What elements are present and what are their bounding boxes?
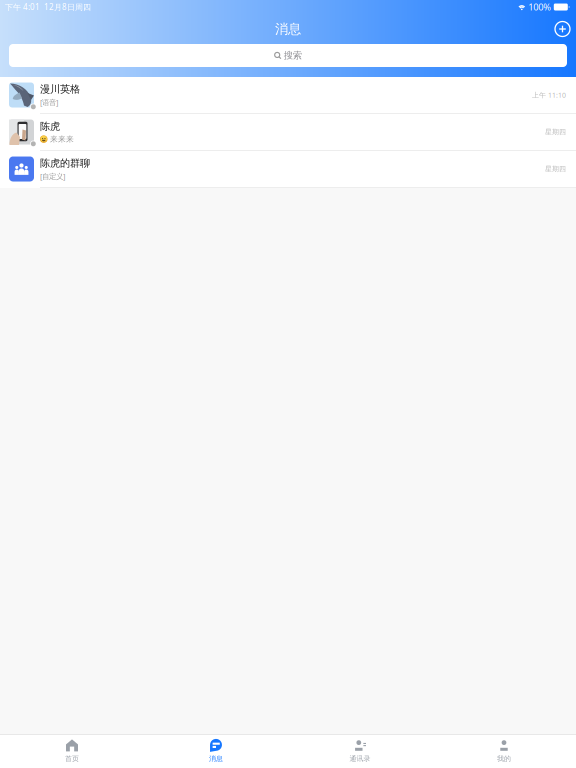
button[interactable]: New chat [549, 15, 576, 42]
staticText: 通讯录 [349, 754, 370, 763]
staticText: 星期四 [545, 128, 566, 136]
button[interactable]: 搜索 [9, 44, 567, 67]
staticText: 陈虎 [40, 120, 60, 133]
staticText: 搜索 [284, 50, 302, 61]
staticText: 消息 [275, 21, 301, 37]
staticText: [语音] [40, 97, 58, 107]
staticText: 下午 4:01 12月8日周四 [5, 2, 91, 12]
button[interactable]: 通讯录 [288, 734, 432, 768]
button[interactable]: 陈虎 [0, 114, 576, 151]
staticText: 首页 [65, 754, 79, 763]
button[interactable]: 消息 [144, 734, 288, 768]
staticText: 星期四 [545, 165, 566, 173]
staticText: 陈虎的群聊 [40, 157, 90, 170]
staticText: [自定义] [40, 171, 65, 181]
staticText: 消息 [209, 754, 223, 763]
staticText: 上午 11:10 [532, 90, 566, 100]
staticText: 100% [528, 1, 551, 13]
button[interactable]: 我的 [432, 734, 576, 768]
staticText: 来来来 [50, 134, 74, 144]
button[interactable]: 漫川英格 [0, 77, 576, 114]
button[interactable]: 首页 [0, 734, 144, 768]
staticText: 漫川英格 [40, 83, 80, 96]
staticText: 我的 [497, 754, 511, 763]
button[interactable]: 陈虎的群聊 [0, 151, 576, 188]
